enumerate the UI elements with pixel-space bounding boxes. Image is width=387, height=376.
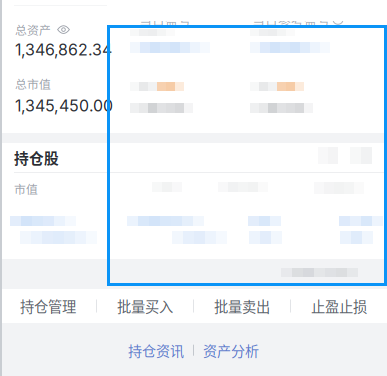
staticText: 1,346,862.34 (15, 40, 112, 59)
staticText: 总市值 (15, 75, 51, 92)
staticText: 1,345,450.00 (15, 96, 113, 115)
staticText: 批量卖出 (214, 296, 270, 316)
button[interactable]: 止盈止损 (291, 289, 387, 323)
staticText: 市值 (14, 180, 38, 197)
button[interactable]: 资产分析 (194, 333, 268, 367)
staticText: 持仓管理 (20, 296, 76, 316)
staticText: 总资产 (15, 21, 51, 38)
button[interactable]: 持仓资讯 (119, 333, 193, 367)
staticText: 当日参考盈亏 (252, 10, 330, 28)
staticText: 持仓股 (14, 147, 59, 168)
button[interactable]: 批量买入 (97, 289, 193, 323)
button[interactable]: 持仓管理 (0, 289, 96, 323)
staticText: 批量买入 (117, 296, 173, 316)
staticText: 止盈止损 (311, 296, 367, 316)
staticText: 当日盈亏 (139, 10, 191, 28)
button[interactable]: 批量卖出 (194, 289, 290, 323)
staticText: 持仓资讯 (128, 340, 184, 360)
staticText: 资产分析 (203, 340, 259, 360)
